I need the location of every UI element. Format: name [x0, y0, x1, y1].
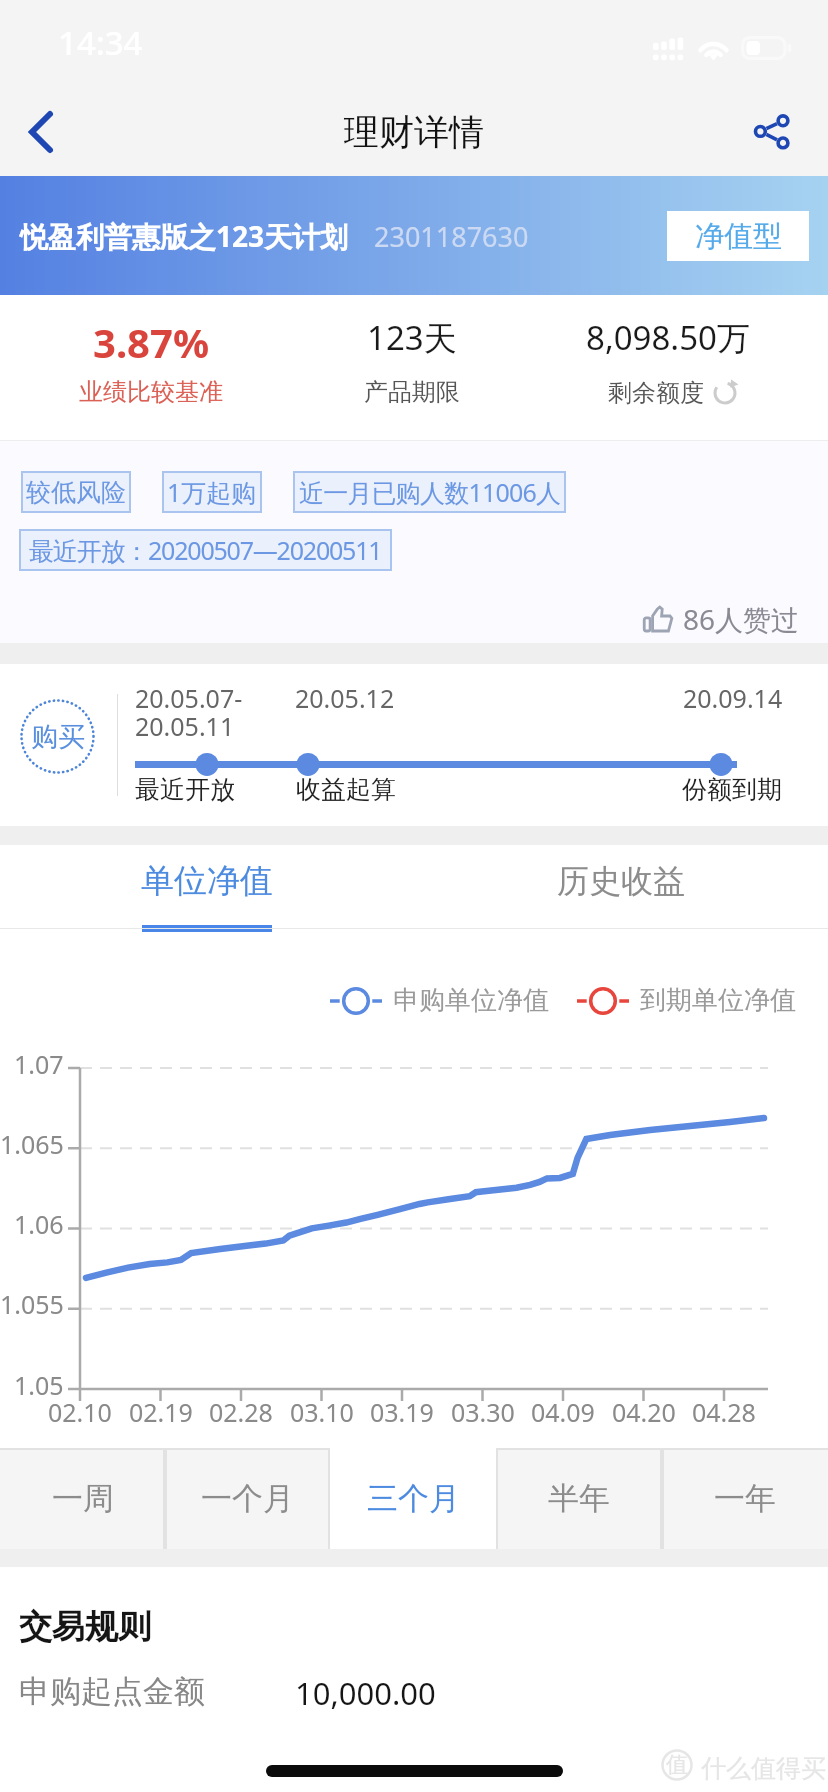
staticText: 1.065 — [0, 1127, 64, 1161]
button[interactable]: Back — [0, 88, 82, 176]
staticText: 1.05 — [14, 1368, 64, 1402]
staticText: 购买 — [31, 720, 85, 754]
staticText: 2301187630 — [374, 218, 529, 255]
staticText: 03.10 — [290, 1395, 354, 1429]
button[interactable]: 购买 — [20, 699, 95, 774]
button[interactable]: 86人赞过 — [643, 600, 800, 638]
button[interactable]: 一个月 — [165, 1448, 330, 1549]
button[interactable]: 净值型 — [667, 211, 809, 261]
staticText: 1.07 — [14, 1047, 64, 1081]
staticText: 3.87% — [93, 315, 209, 369]
staticText: 02.19 — [129, 1395, 193, 1429]
staticText: 20.05.07- 20.05.11 — [135, 681, 243, 743]
staticText: 交易规则 — [19, 1606, 151, 1648]
button[interactable]: 一年 — [662, 1448, 828, 1549]
staticText: 值 — [666, 1751, 688, 1779]
staticText: 业绩比较基准 — [79, 377, 223, 407]
button[interactable]: 一周 — [0, 1448, 165, 1549]
staticText: 近一月已购人数11006人 — [299, 475, 561, 509]
staticText: 02.10 — [48, 1395, 112, 1429]
staticText: 历史收益 — [557, 861, 685, 901]
button[interactable]: 最近开放：20200507—20200511 — [19, 529, 392, 571]
staticText: 一个月 — [201, 1479, 294, 1518]
staticText: 04.09 — [531, 1395, 595, 1429]
staticText: 86人赞过 — [683, 600, 800, 638]
staticText: 申购单位净值 — [393, 984, 549, 1017]
staticText: 8,098.50万 — [586, 315, 750, 360]
staticText: 剩余额度 — [608, 378, 704, 408]
button[interactable]: 单位净值 — [0, 845, 414, 932]
staticText: 1.06 — [14, 1207, 64, 1241]
button[interactable]: 1万起购 — [162, 471, 262, 513]
staticText: 一周 — [52, 1479, 114, 1518]
staticText: 04.28 — [692, 1395, 756, 1429]
staticText: 什么值得买 — [701, 1753, 826, 1784]
staticText: 单位净值 — [141, 860, 273, 902]
staticText: 03.19 — [370, 1395, 434, 1429]
staticText: 14:34 — [58, 20, 143, 65]
staticText: 份额到期 — [682, 774, 782, 805]
staticText: 悦盈利普惠版之123天计划 — [20, 217, 349, 255]
staticText: 一年 — [714, 1479, 776, 1518]
staticText: 最近开放 — [135, 774, 235, 805]
staticText: 半年 — [548, 1479, 610, 1518]
staticText: 三个月 — [367, 1479, 460, 1518]
staticText: 产品期限 — [364, 377, 460, 407]
staticText: 20.09.14 — [683, 681, 783, 715]
button[interactable]: Share — [732, 88, 828, 176]
staticText: 1万起购 — [167, 475, 257, 509]
staticText: 1.055 — [0, 1287, 64, 1321]
staticText: 03.30 — [451, 1395, 515, 1429]
staticText: 123天 — [367, 315, 457, 360]
staticText: 收益起算 — [296, 774, 396, 805]
staticText: 20.05.12 — [295, 681, 395, 715]
staticText: 02.28 — [209, 1395, 273, 1429]
staticText: 到期单位净值 — [640, 984, 796, 1017]
button[interactable]: 较低风险 — [21, 471, 131, 513]
staticText: 申购起点金额 — [19, 1672, 205, 1711]
button[interactable]: 半年 — [496, 1448, 662, 1549]
button[interactable]: 历史收益 — [414, 845, 828, 932]
staticText: 最近开放：20200507—20200511 — [29, 533, 382, 567]
staticText: 10,000.00 — [295, 1672, 436, 1714]
button[interactable]: 三个月 — [330, 1448, 496, 1549]
button[interactable]: 近一月已购人数11006人 — [293, 471, 566, 513]
staticText: 理财详情 — [344, 110, 484, 154]
staticText: 04.20 — [612, 1395, 676, 1429]
staticText: 较低风险 — [26, 477, 126, 508]
staticText: 净值型 — [695, 218, 782, 255]
